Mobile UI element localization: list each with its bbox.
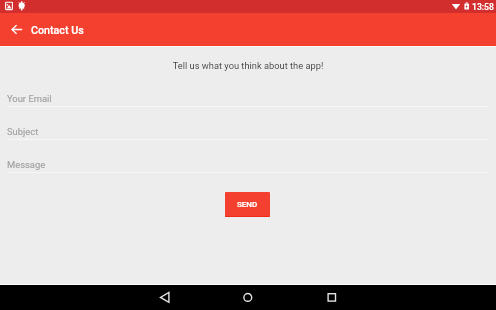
staticText: SEND (237, 200, 258, 209)
button[interactable]: SEND (225, 192, 270, 217)
button[interactable]: Your Email (0, 93, 496, 111)
staticText: Your Email (7, 93, 52, 104)
button[interactable]: Home (206, 285, 290, 310)
button[interactable]: Navigate up (8, 20, 27, 39)
button[interactable]: Subject (0, 126, 496, 144)
button[interactable]: Recent apps (290, 285, 496, 310)
button[interactable]: Back (0, 285, 206, 310)
staticText: 13:58 (472, 2, 494, 12)
staticText: Message (7, 159, 46, 170)
button[interactable]: Message (0, 159, 496, 177)
staticText: Contact Us (31, 24, 84, 37)
staticText: Subject (7, 126, 39, 137)
staticText: Tell us what you think about the app! (0, 60, 496, 71)
